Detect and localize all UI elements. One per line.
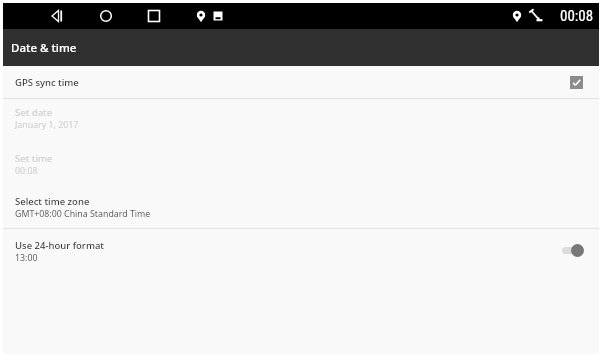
button[interactable]: Use 24-hour format: [3, 229, 599, 265]
button[interactable]: Location: [194, 3, 208, 29]
button[interactable]: Recent apps: [142, 3, 166, 29]
button[interactable]: GPS sync time: [3, 66, 599, 98]
button[interactable]: Home: [94, 3, 118, 29]
staticText: Select time zone: [15, 195, 90, 208]
other: GPS fix: [510, 3, 524, 29]
button[interactable]: Back: [45, 3, 69, 29]
staticText: Set date: [15, 106, 53, 119]
staticText: 13:00: [15, 252, 38, 264]
other: Phone signal: [527, 3, 545, 29]
staticText: GPS sync time: [15, 76, 79, 89]
staticText: 00:08: [15, 165, 38, 177]
other: Use 24-hour format, on: [557, 243, 584, 257]
staticText: Set time: [15, 152, 53, 165]
staticText: Date & time: [11, 40, 77, 56]
button[interactable]: Screenshot: [211, 3, 225, 29]
button[interactable]: Select time zone: [3, 191, 599, 228]
staticText: January 1, 2017: [15, 119, 79, 131]
other: GPS sync time enabled: [570, 76, 583, 89]
staticText: 00:08: [560, 7, 594, 25]
staticText: GMT+08:00 China Standard Time: [15, 208, 151, 220]
staticText: Use 24-hour format: [15, 239, 104, 252]
